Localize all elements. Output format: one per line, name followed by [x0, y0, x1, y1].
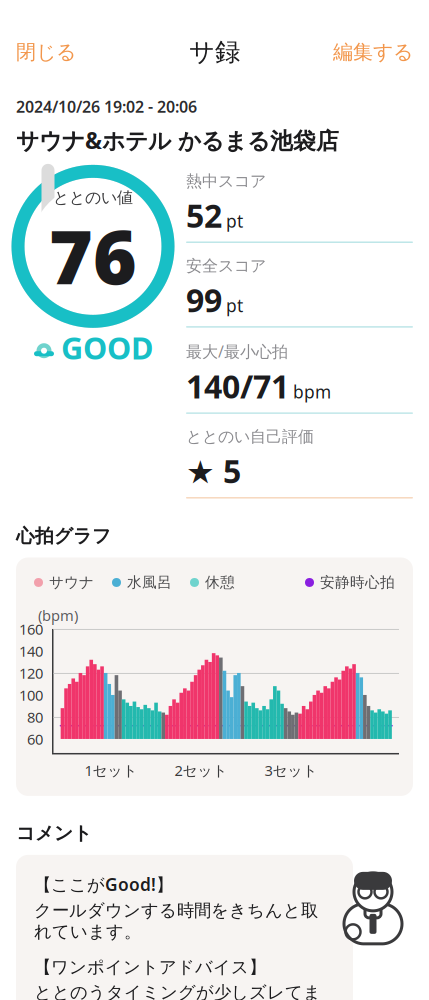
staticText: 140: [19, 641, 43, 661]
staticText: サウナ: [49, 573, 94, 591]
staticText: 99: [186, 279, 222, 321]
staticText: 心拍グラフ: [16, 524, 111, 547]
staticText: 120: [19, 663, 43, 683]
staticText: クールダウンする時間をきちんと取れています。: [34, 900, 318, 942]
staticText: 安全スコア: [186, 256, 266, 276]
staticText: (bpm): [38, 605, 78, 625]
staticText: pt: [226, 209, 243, 232]
staticText: ととのい自己評価: [186, 427, 314, 447]
button[interactable]: サウナ&ホテル かるまる池袋店: [0, 117, 429, 155]
staticText: 2セット: [174, 760, 227, 780]
staticText: サ録: [189, 36, 240, 67]
staticText: 水風呂: [127, 573, 172, 591]
staticText: GOOD: [61, 327, 153, 368]
staticText: 熱中スコア: [186, 171, 266, 191]
staticText: 【ここがGood!】: [34, 873, 173, 896]
staticText: 編集する: [333, 40, 413, 64]
staticText: 【ワンポイントアドバイス】: [34, 956, 266, 978]
staticText: 60: [27, 729, 43, 749]
staticText: コメント: [16, 822, 92, 845]
staticText: 76: [49, 206, 137, 305]
button[interactable]: 閉じる: [0, 30, 92, 74]
staticText: ★ 5: [186, 449, 241, 492]
staticText: サウナ&ホテル かるまる池袋店: [16, 125, 339, 155]
staticText: 安静時心拍: [320, 573, 395, 591]
staticText: 休憩: [205, 573, 235, 591]
staticText: 最大/最小心拍: [186, 341, 288, 362]
staticText: 52: [186, 194, 222, 236]
button[interactable]: 編集する: [317, 30, 429, 74]
staticText: pt: [226, 294, 243, 317]
staticText: 140/71: [186, 365, 289, 407]
staticText: ととのうタイミングが少しズレてます。身体への負荷や動線を確認 してみて！: [34, 982, 321, 1000]
staticText: 100: [19, 685, 43, 705]
staticText: 閉じる: [16, 40, 76, 64]
staticText: 160: [19, 619, 43, 639]
staticText: 80: [27, 707, 43, 727]
staticText: 3セット: [264, 760, 317, 780]
staticText: 1セット: [84, 760, 137, 780]
staticText: bpm: [293, 380, 331, 403]
staticText: ととのい値: [53, 188, 133, 208]
staticText: 2024/10/26 19:02 - 20:06: [16, 96, 197, 117]
